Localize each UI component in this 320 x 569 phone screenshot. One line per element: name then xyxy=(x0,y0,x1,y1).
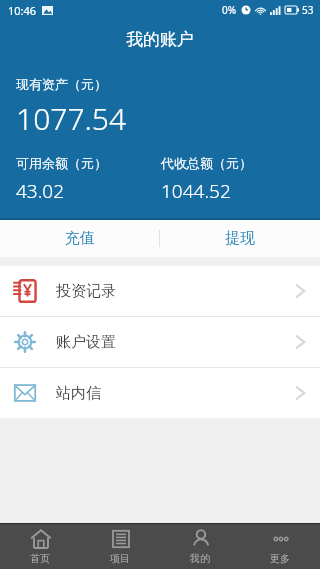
staticText: 代收总额（元） xyxy=(161,155,252,171)
button[interactable]: 首页 xyxy=(0,524,80,569)
staticText: 10:46 xyxy=(8,3,37,18)
button[interactable]: 投资记录 xyxy=(0,266,320,316)
staticText: 站内信 xyxy=(56,384,101,403)
staticText: 43.02 xyxy=(16,178,65,204)
button[interactable]: 站内信 xyxy=(0,368,320,418)
staticText: 投资记录 xyxy=(56,282,116,301)
button[interactable]: 我的 xyxy=(160,524,240,569)
staticText: 账户设置 xyxy=(56,333,116,352)
staticText: 我的 xyxy=(190,552,210,565)
staticText: 首页 xyxy=(30,552,50,565)
staticText: 我的账户 xyxy=(126,29,194,50)
staticText: 现有资产（元） xyxy=(16,76,107,92)
staticText: 0% xyxy=(222,3,237,17)
staticText: 更多 xyxy=(270,552,290,565)
button[interactable]: 账户设置 xyxy=(0,317,320,367)
button[interactable]: 提现 xyxy=(160,220,320,257)
staticText: 53 xyxy=(302,3,314,17)
button[interactable]: 更多 xyxy=(240,524,320,569)
button[interactable]: 充值 xyxy=(0,220,159,257)
staticText: 1044.52 xyxy=(161,178,231,204)
button[interactable]: 项目 xyxy=(80,524,160,569)
staticText: 可用余额（元） xyxy=(16,155,107,171)
staticText: 充值 xyxy=(65,229,95,248)
staticText: 提现 xyxy=(225,229,255,248)
staticText: 1077.54 xyxy=(16,98,127,139)
staticText: 项目 xyxy=(110,552,130,565)
